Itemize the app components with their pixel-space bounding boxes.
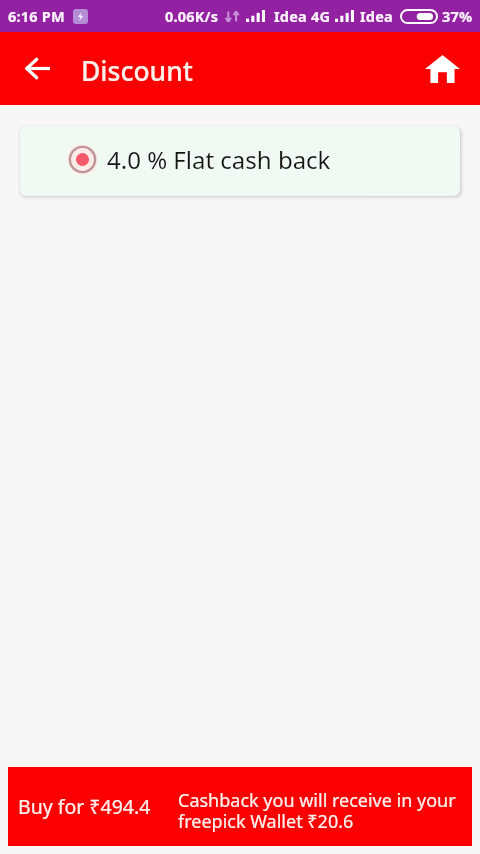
staticText: Discount: [81, 53, 193, 89]
button[interactable]: Home: [412, 32, 472, 105]
staticText: 37%: [442, 6, 473, 26]
button[interactable]: 4.0 % Flat cash back: [20, 126, 460, 196]
button[interactable]: Buy for ₹494.4: [8, 767, 472, 846]
button[interactable]: Back: [0, 32, 64, 105]
staticText: 0.06K/s: [165, 6, 219, 26]
staticText: Idea 4G: [274, 6, 331, 26]
staticText: 6:16 PM: [8, 6, 65, 26]
staticText: 4.0 % Flat cash back: [107, 143, 331, 176]
staticText: Buy for ₹494.4: [18, 793, 151, 820]
staticText: Cashback you will receive in your freepi…: [178, 788, 472, 834]
staticText: Idea: [360, 6, 393, 26]
